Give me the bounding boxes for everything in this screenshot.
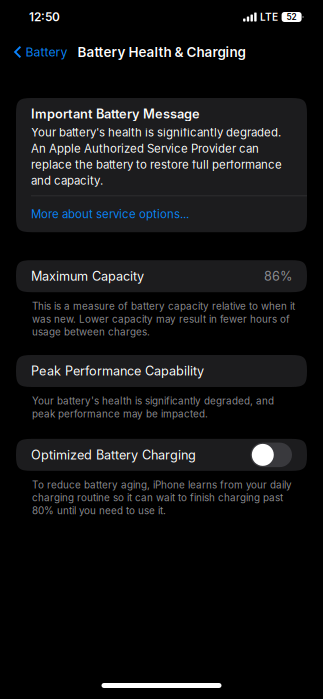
staticText: To reduce battery aging, iPhone learns f… xyxy=(32,479,292,517)
staticText: More about service options... xyxy=(31,207,189,221)
staticText: 12:50 xyxy=(29,10,60,24)
staticText: Your battery's health is significantly d… xyxy=(32,395,274,420)
staticText: Peak Performance Capability xyxy=(31,363,204,379)
staticText: Battery Health & Charging xyxy=(77,44,245,60)
button[interactable]: Optimized Battery Charging xyxy=(250,443,292,467)
staticText: 86% xyxy=(264,268,292,284)
staticText: LTE xyxy=(260,11,278,23)
staticText: Maximum Capacity xyxy=(31,268,144,284)
button[interactable]: Peak Performance Capability xyxy=(16,355,307,387)
button[interactable]: Battery xyxy=(0,37,77,67)
staticText: 52 xyxy=(287,12,297,22)
staticText: Battery xyxy=(25,45,67,59)
staticText: Optimized Battery Charging xyxy=(31,447,196,462)
button[interactable]: Maximum Capacity xyxy=(16,260,307,292)
staticText: Important Battery Message xyxy=(31,106,200,121)
staticText: This is a measure of battery capacity re… xyxy=(32,300,295,338)
staticText: Your battery's health is significantly d… xyxy=(31,125,282,188)
button[interactable]: More about service options... xyxy=(16,196,307,232)
